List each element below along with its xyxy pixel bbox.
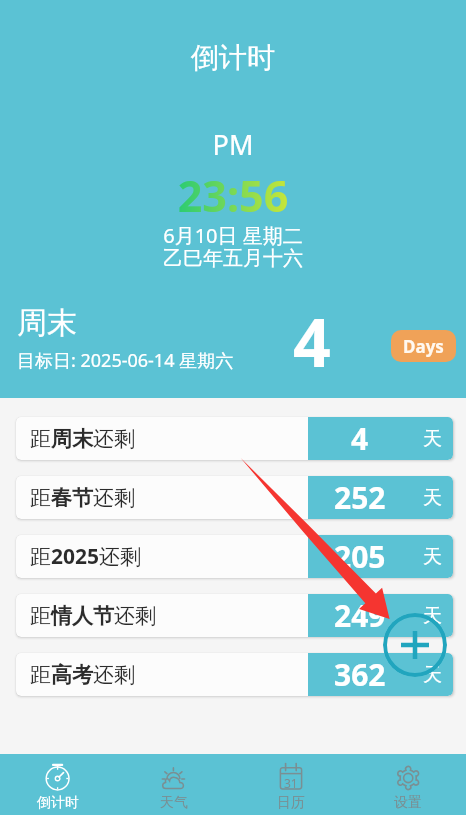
staticText: 252 [334,477,386,518]
staticText: 距情人节还剩 [30,603,156,629]
button[interactable]: 倒计时 [0,754,116,815]
staticText: 设置 [394,794,422,812]
button[interactable]: 天气 [116,754,232,815]
button[interactable]: 距高考还剩 [16,653,453,696]
button[interactable]: 距春节还剩 [16,476,453,519]
button[interactable]: 距2025还剩 [16,535,453,578]
button[interactable]: 距情人节还剩 [16,594,453,637]
staticText: PM [0,126,466,163]
staticText: 周末 [17,304,77,342]
staticText: 距周末还剩 [30,426,135,452]
button[interactable]: 31 [232,754,349,815]
staticText: 距春节还剩 [30,485,135,511]
staticText: 4 [293,296,331,386]
staticText: 205 [334,536,386,577]
staticText: 天 [423,545,442,569]
staticText: 天 [423,486,442,510]
staticText: 362 [334,654,386,695]
button[interactable]: 设置 [349,754,466,815]
staticText: 31 [284,775,298,791]
staticText: 日历 [277,794,305,812]
button[interactable]: 距周末还剩 [16,417,453,460]
staticText: 距2025还剩 [30,542,142,571]
staticText: 天气 [160,794,188,812]
staticText: 天 [423,604,442,628]
staticText: 倒计时 [37,794,79,812]
staticText: 距高考还剩 [30,662,135,688]
staticText: 天 [423,663,442,687]
staticText: 6月10日 星期二 乙巳年五月十六 [0,222,466,271]
staticText: 目标日: 2025-06-14 星期六 [17,348,234,373]
staticText: Days [403,335,444,358]
button[interactable]: Add countdown [383,613,447,677]
staticText: 23:56 [0,166,466,225]
staticText: 4 [351,418,369,459]
staticText: 249 [334,595,386,636]
staticText: 天 [423,427,442,451]
staticText: 倒计时 [0,40,466,75]
button[interactable]: Days [391,330,456,362]
